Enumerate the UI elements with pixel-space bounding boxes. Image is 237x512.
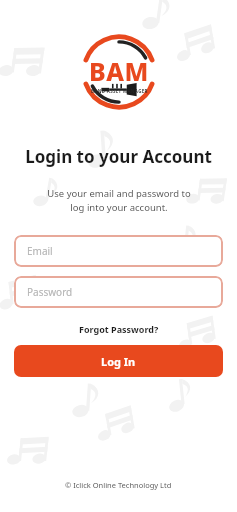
button[interactable]: Password [14, 276, 223, 308]
button[interactable]: Log In [14, 345, 223, 377]
staticText: Use your email and password to log into … [47, 187, 191, 214]
staticText: © Iclick Online Technology Ltd [65, 480, 172, 490]
staticText: BAM [89, 54, 149, 88]
staticText: Log In [101, 354, 136, 369]
staticText: Forgot Password? [79, 323, 159, 335]
staticText: Email [27, 244, 53, 258]
staticText: BAND ASSET MANAGER [91, 88, 148, 94]
button[interactable]: Email [14, 235, 223, 267]
button[interactable]: Forgot Password? [76, 320, 162, 338]
staticText: Login to your Account [25, 145, 212, 168]
staticText: Password [27, 285, 73, 299]
